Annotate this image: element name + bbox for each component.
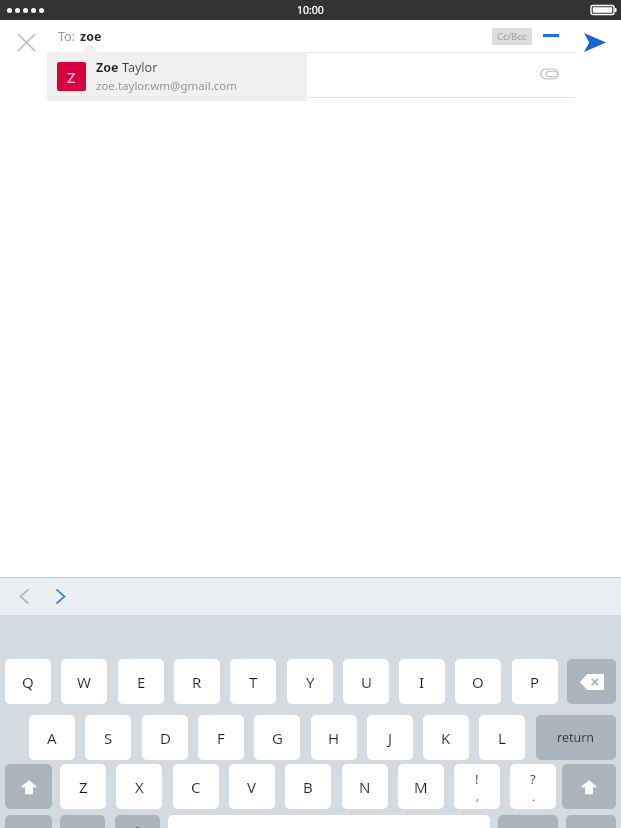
button[interactable]: A [29,715,75,760]
staticText: G [272,728,283,748]
button[interactable]: ! [454,764,500,809]
button[interactable]: Shift [5,764,52,809]
staticText: O [472,672,484,692]
staticText: E [137,672,146,692]
staticText: A [47,728,57,748]
staticText: K [441,728,451,748]
staticText: Y [306,672,315,692]
button[interactable]: Shift [562,764,616,809]
button[interactable]: Close [8,24,44,60]
button[interactable]: W [61,659,107,704]
staticText: To: [58,28,75,45]
staticText: N [359,777,371,797]
button[interactable]: F [198,715,244,760]
button[interactable]: .?123 [5,815,52,828]
staticText: , [476,789,479,804]
button[interactable]: Z [47,52,307,101]
button[interactable]: Change language [60,815,105,828]
button[interactable]: X [116,764,162,809]
button[interactable]: P [512,659,558,704]
button[interactable]: return [536,715,616,760]
button[interactable]: V [229,764,275,809]
button[interactable]: ? [510,764,556,809]
staticText: H [328,728,340,748]
button[interactable]: B [285,764,331,809]
button[interactable]: Z [60,764,106,809]
button[interactable]: C [173,764,219,809]
button[interactable]: Hide keyboard [566,815,616,828]
staticText: X [135,777,144,797]
staticText: Zoe [96,59,119,76]
button[interactable]: T [230,659,276,704]
button[interactable]: S [85,715,131,760]
staticText: Taylor [122,59,158,76]
staticText: U [361,672,372,692]
button[interactable]: .?123 [498,815,558,828]
staticText: Q [22,672,34,692]
button[interactable]: Cc/Bcc [492,28,532,45]
staticText: L [498,728,506,748]
staticText: F [217,728,225,748]
button[interactable]: Collapse recipients [536,24,566,46]
staticText: Z [67,67,76,87]
button[interactable]: K [423,715,469,760]
button[interactable]: L [479,715,525,760]
staticText: B [303,777,313,797]
staticText: zoe.taylor.wm@gmail.com [96,78,237,94]
staticText: zoe [80,28,102,45]
button[interactable]: Send [578,26,612,58]
button[interactable]: U [343,659,389,704]
staticText: . [532,789,535,804]
button[interactable]: O [455,659,501,704]
button[interactable]: Attach file [533,58,565,90]
button[interactable]: Previous [10,582,38,610]
button[interactable]: J [367,715,413,760]
button[interactable]: Next [46,582,74,610]
staticText: P [530,672,540,692]
staticText: V [247,777,257,797]
staticText: Cc/Bcc [497,30,527,43]
staticText: D [160,728,171,748]
staticText: W [77,672,91,692]
staticText: ! [475,770,479,788]
button[interactable]: M [398,764,444,809]
staticText: T [249,672,258,692]
staticText: R [192,672,202,692]
button[interactable]: H [311,715,357,760]
button[interactable]: R [174,659,220,704]
button[interactable]: D [142,715,188,760]
staticText: Z [79,777,88,797]
button[interactable]: G [254,715,300,760]
staticText: ? [530,770,536,788]
staticText: I [419,672,425,692]
staticText: S [104,728,113,748]
staticText: M [414,777,428,797]
button[interactable]: I [399,659,445,704]
button[interactable]: N [342,764,388,809]
button[interactable]: Voice input [115,815,160,828]
staticText: C [191,777,201,797]
button[interactable]: Backspace [567,659,616,704]
staticText: return [557,729,595,746]
button[interactable]: Q [5,659,51,704]
button[interactable]: E [118,659,164,704]
staticText: 10:00 [297,3,324,17]
staticText: J [388,728,393,748]
button[interactable]: Y [287,659,333,704]
